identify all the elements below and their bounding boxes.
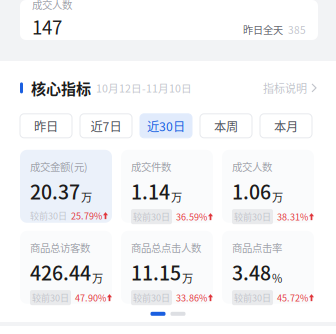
button[interactable]: 成交件数 <box>121 150 213 223</box>
button[interactable]: 昨日 <box>20 114 72 138</box>
staticText: 较前30日 <box>234 291 271 304</box>
staticText: 万 <box>182 270 193 286</box>
button[interactable]: 近30日 <box>140 114 192 138</box>
button[interactable]: 成交人数 <box>222 150 314 223</box>
staticText: 万 <box>171 189 182 205</box>
staticText: 较前30日 <box>30 209 67 222</box>
button[interactable]: 商品总访客数 <box>20 231 112 304</box>
staticText: 较前30日 <box>133 291 170 304</box>
staticText: 本月 <box>274 117 298 135</box>
staticText: 成交人数 <box>32 0 72 12</box>
staticText: 商品总访客数 <box>30 240 90 255</box>
staticText: 商品点击率 <box>232 240 282 255</box>
staticText: 1.06 <box>232 177 271 205</box>
staticText: 成交人数 <box>232 159 272 174</box>
staticText: 426.44 <box>30 258 91 286</box>
button[interactable]: 本周 <box>200 114 252 138</box>
staticText: 近30日 <box>147 117 185 135</box>
staticText: 20.37 <box>30 177 80 205</box>
staticText: 万 <box>92 270 103 286</box>
staticText: 昨日全天 <box>243 22 283 37</box>
button[interactable]: 指标说明 <box>263 80 316 96</box>
staticText: 25.79% <box>71 209 102 222</box>
staticText: 万 <box>81 189 92 205</box>
staticText: 较前30日 <box>234 210 271 223</box>
staticText: 较前30日 <box>32 291 69 304</box>
staticText: 指标说明 <box>263 80 307 96</box>
staticText: 本周 <box>214 117 238 135</box>
staticText: 近7日 <box>90 117 121 135</box>
staticText: 核心指标 <box>31 77 91 99</box>
button[interactable]: 近7日 <box>80 114 132 138</box>
staticText: 成交金额(元) <box>30 159 88 174</box>
staticText: 47.90% <box>75 291 106 304</box>
staticText: 商品总点击人数 <box>131 240 201 255</box>
staticText: 11.15 <box>131 258 181 286</box>
staticText: 385 <box>288 22 306 37</box>
button[interactable]: 商品总点击人数 <box>121 231 213 304</box>
staticText: % <box>272 270 282 286</box>
staticText: 38.31% <box>277 210 308 223</box>
staticText: 10月12日-11月10日 <box>96 80 192 96</box>
button[interactable]: 成交金额(元) <box>20 150 112 223</box>
staticText: 36.59% <box>176 210 207 223</box>
staticText: 较前30日 <box>133 210 170 223</box>
staticText: 33.86% <box>176 291 207 304</box>
staticText: 1.14 <box>131 177 170 205</box>
button[interactable]: 商品点击率 <box>222 231 314 304</box>
staticText: 147 <box>32 13 62 40</box>
button[interactable]: 本月 <box>260 114 312 138</box>
staticText: 万 <box>272 189 283 205</box>
staticText: 45.72% <box>277 291 308 304</box>
staticText: 昨日 <box>34 117 58 135</box>
staticText: 3.48 <box>232 258 271 286</box>
staticText: 成交件数 <box>131 159 171 174</box>
